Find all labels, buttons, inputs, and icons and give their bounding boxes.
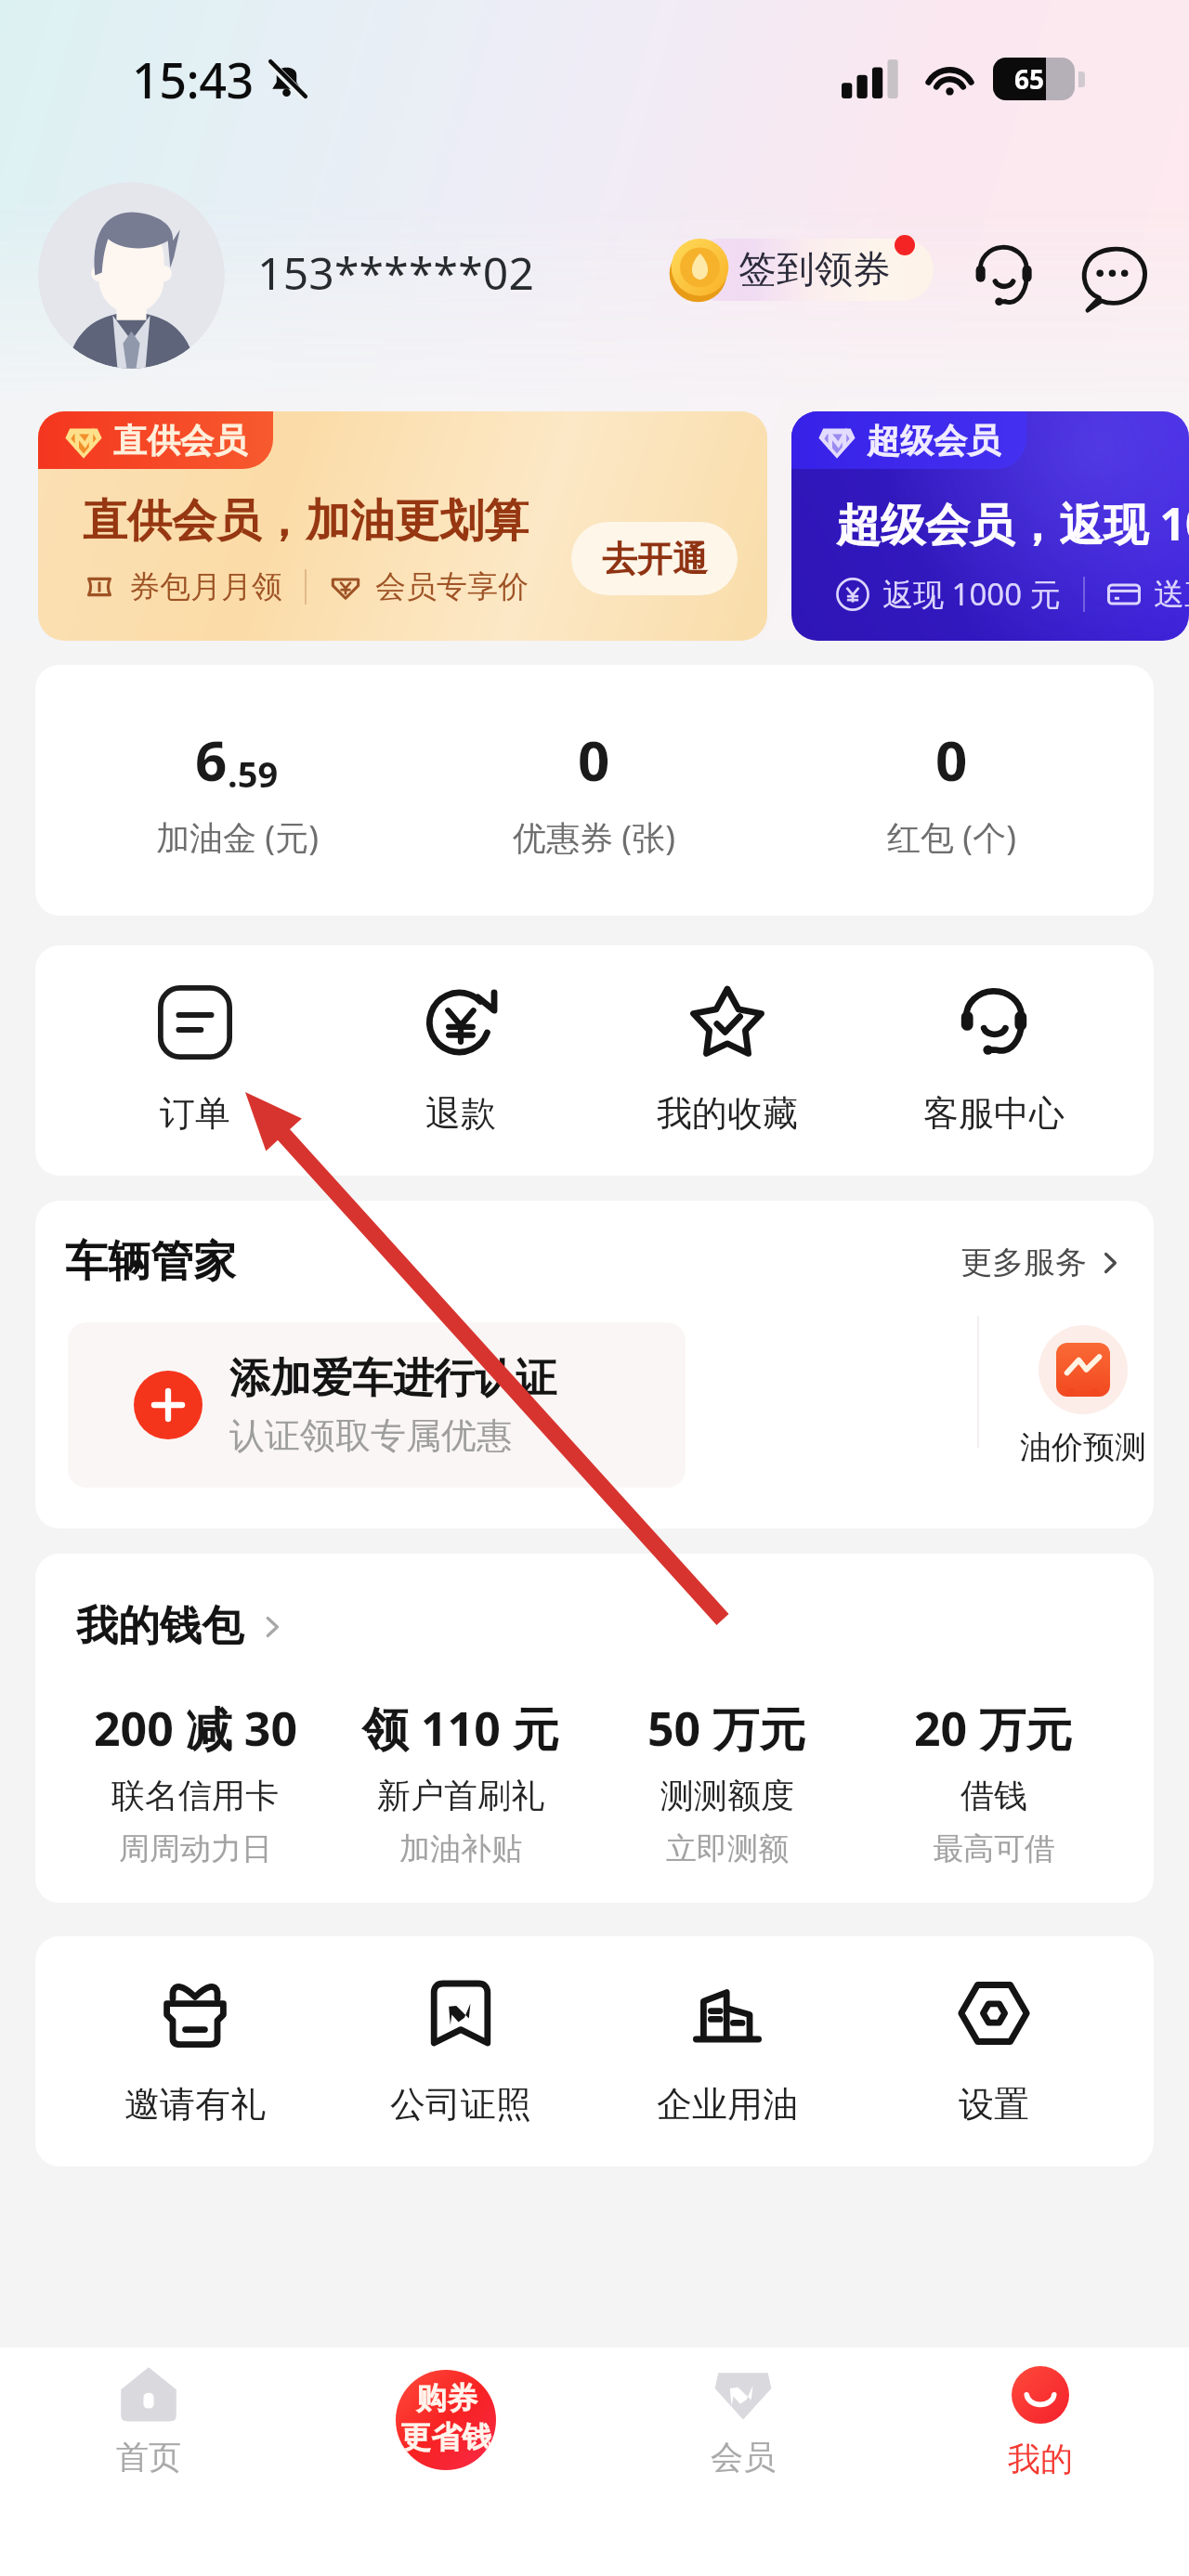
- staticText: 更省钱: [400, 2418, 492, 2457]
- staticText: 去开通: [602, 537, 708, 581]
- staticText: 6: [195, 722, 228, 798]
- button[interactable]: Profile photo: [38, 182, 225, 369]
- button[interactable]: 超级会员: [791, 411, 1189, 641]
- staticText: 企业用油: [657, 2082, 798, 2127]
- button[interactable]: 首页: [0, 2348, 297, 2576]
- staticText: 退款: [425, 1091, 496, 1136]
- staticText: 加油金 (元): [156, 814, 319, 860]
- staticText: 联名信用卡: [111, 1775, 279, 1816]
- staticText: 200 减 30: [94, 1697, 297, 1760]
- staticText: 送直供: [1154, 575, 1189, 614]
- staticText: 更多服务: [960, 1242, 1087, 1282]
- staticText: 邀请有礼: [124, 2082, 266, 2127]
- staticText: 我的收藏: [657, 1091, 798, 1136]
- staticText: 153******02: [257, 242, 535, 303]
- button[interactable]: 200 减 30: [62, 1697, 328, 1868]
- staticText: 直供会员: [113, 420, 247, 462]
- staticText: 0: [578, 722, 610, 798]
- staticText: 我的钱包: [76, 1600, 243, 1653]
- staticText: 会员专享价: [375, 567, 529, 606]
- staticText: 20 万元: [914, 1697, 1073, 1760]
- button[interactable]: 更多服务: [960, 1242, 1126, 1282]
- button[interactable]: 0: [415, 665, 773, 916]
- staticText: 超级会员，返现 1000: [836, 493, 1189, 554]
- button[interactable]: 我的: [892, 2348, 1189, 2576]
- other: 签到领券: [655, 235, 934, 311]
- staticText: .59: [228, 749, 279, 798]
- button[interactable]: 企业用油: [594, 1936, 860, 2166]
- staticText: 超级会员: [867, 420, 1000, 462]
- button[interactable]: 0: [773, 665, 1130, 916]
- button[interactable]: 领 110 元: [328, 1697, 594, 1868]
- staticText: 返现 1000 元: [882, 573, 1061, 615]
- staticText: 添加爱车进行认证: [229, 1353, 556, 1404]
- button[interactable]: 我的收藏: [594, 945, 860, 1176]
- button[interactable]: 20 万元: [860, 1697, 1127, 1868]
- staticText: 设置: [959, 2082, 1029, 2127]
- staticText: 车辆管家: [65, 1235, 236, 1289]
- staticText: 借钱: [960, 1775, 1027, 1816]
- staticText: 签到领券: [738, 246, 891, 294]
- staticText: 新户首刷礼: [377, 1775, 544, 1816]
- button[interactable]: [68, 1322, 686, 1488]
- button[interactable]: 我的钱包: [76, 1600, 288, 1653]
- button[interactable]: 邀请有礼: [62, 1936, 328, 2166]
- button[interactable]: Messages: [1078, 241, 1150, 314]
- staticText: 立即测额: [666, 1829, 789, 1868]
- staticText: 券包月月领: [129, 567, 282, 606]
- button[interactable]: 会员: [594, 2348, 892, 2576]
- button[interactable]: 签到领券: [688, 239, 934, 301]
- staticText: 领 110 元: [362, 1697, 559, 1760]
- button[interactable]: 公司证照: [328, 1936, 594, 2166]
- button[interactable]: 退款: [328, 945, 594, 1176]
- staticText: 红包 (个): [887, 814, 1016, 860]
- staticText: 首页: [116, 2437, 181, 2478]
- button[interactable]: 去开通: [571, 522, 738, 595]
- staticText: 公司证照: [390, 2082, 531, 2127]
- staticText: 15:43: [132, 46, 254, 112]
- button[interactable]: 购券更省钱: [297, 2348, 594, 2576]
- staticText: 优惠券 (张): [513, 814, 675, 860]
- staticText: 周周动力日: [119, 1829, 272, 1868]
- button[interactable]: 6: [59, 665, 415, 916]
- staticText: 65: [1014, 61, 1045, 97]
- staticText: 我的: [1008, 2439, 1073, 2479]
- staticText: 油价预测: [1020, 1427, 1146, 1467]
- staticText: 直供会员，加油更划算: [83, 493, 529, 549]
- staticText: 客服中心: [923, 1091, 1065, 1136]
- staticText: 50 万元: [647, 1697, 806, 1760]
- staticText: 订单: [160, 1091, 230, 1136]
- staticText: 购券: [416, 2379, 477, 2418]
- button[interactable]: Customer service: [968, 241, 1040, 314]
- staticText: 最高可借: [933, 1829, 1055, 1868]
- button[interactable]: 油价预测: [998, 1305, 1154, 1487]
- button[interactable]: 50 万元: [594, 1697, 860, 1868]
- staticText: 加油补贴: [399, 1829, 522, 1868]
- staticText: 认证领取专属优惠: [229, 1413, 512, 1458]
- button[interactable]: 直供会员: [38, 411, 767, 641]
- staticText: 测测额度: [660, 1775, 794, 1816]
- staticText: 会员: [711, 2437, 776, 2478]
- button[interactable]: 客服中心: [860, 945, 1127, 1176]
- button[interactable]: 设置: [860, 1936, 1127, 2166]
- staticText: 0: [935, 722, 968, 798]
- button[interactable]: 订单: [62, 945, 328, 1176]
